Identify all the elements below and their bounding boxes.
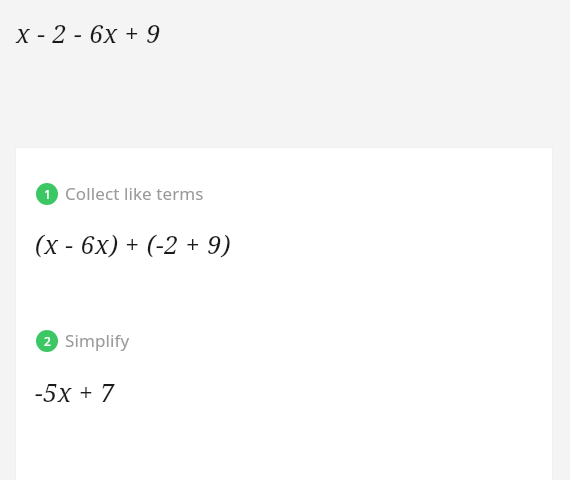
staticText: 2 bbox=[44, 333, 51, 349]
button[interactable]: −5x + 7 bbox=[35, 375, 115, 409]
button[interactable]: (x − 6x) + (−2 + 9) bbox=[35, 227, 231, 261]
button[interactable]: x − 2 − 6x + 9 bbox=[16, 16, 161, 50]
staticText: (x − 6x) + (−2 + 9) bbox=[35, 227, 231, 261]
staticText: 1 bbox=[44, 186, 51, 202]
staticText: x − 2 − 6x + 9 bbox=[16, 16, 161, 50]
button[interactable]: 2 bbox=[15, 327, 553, 354]
staticText: Simplify bbox=[65, 329, 130, 352]
staticText: Collect like terms bbox=[65, 182, 204, 205]
staticText: −5x + 7 bbox=[35, 375, 115, 409]
button[interactable]: 1 bbox=[15, 180, 553, 207]
